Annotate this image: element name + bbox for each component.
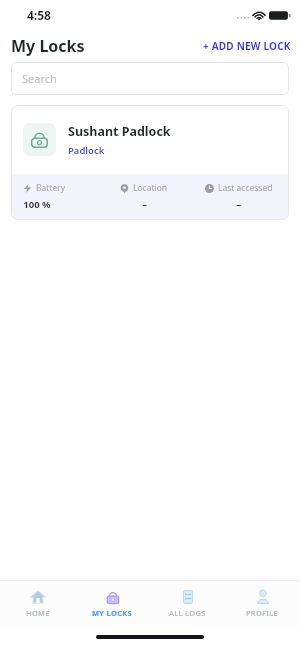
staticText: Battery	[36, 182, 66, 194]
staticText: Search	[22, 71, 57, 86]
staticText: MY LOCKS	[92, 608, 133, 618]
staticText: Location	[133, 182, 168, 194]
staticText: –	[236, 198, 241, 211]
other: Location	[120, 184, 129, 193]
button[interactable]: Sushant Padlock	[11, 105, 289, 220]
other: Profile	[255, 589, 271, 605]
staticText: Sushant Padlock	[68, 123, 171, 140]
staticText: 100 %	[23, 198, 51, 211]
other: All Logs	[180, 589, 196, 605]
other: Last accessed	[205, 184, 214, 193]
staticText: + ADD NEW LOCK	[203, 39, 291, 53]
staticText: Last accessed	[218, 182, 273, 194]
button[interactable]: My Locks	[75, 585, 150, 622]
button[interactable]: Search	[11, 62, 289, 95]
button[interactable]: + ADD NEW LOCK	[194, 34, 300, 58]
button[interactable]: Profile	[225, 585, 300, 622]
button[interactable]: Home	[0, 585, 75, 622]
other: Battery	[23, 184, 32, 193]
other: My Locks	[105, 589, 121, 605]
staticText: –	[142, 198, 147, 211]
other: Home	[30, 589, 46, 605]
button[interactable]: All Logs	[150, 585, 225, 622]
staticText: ALL LOGS	[169, 608, 206, 618]
staticText: 4:58	[27, 7, 51, 23]
staticText: My Locks	[11, 35, 85, 57]
staticText: PROFILE	[246, 608, 279, 618]
staticText: HOME	[26, 608, 50, 618]
staticText: Padlock	[68, 144, 105, 157]
